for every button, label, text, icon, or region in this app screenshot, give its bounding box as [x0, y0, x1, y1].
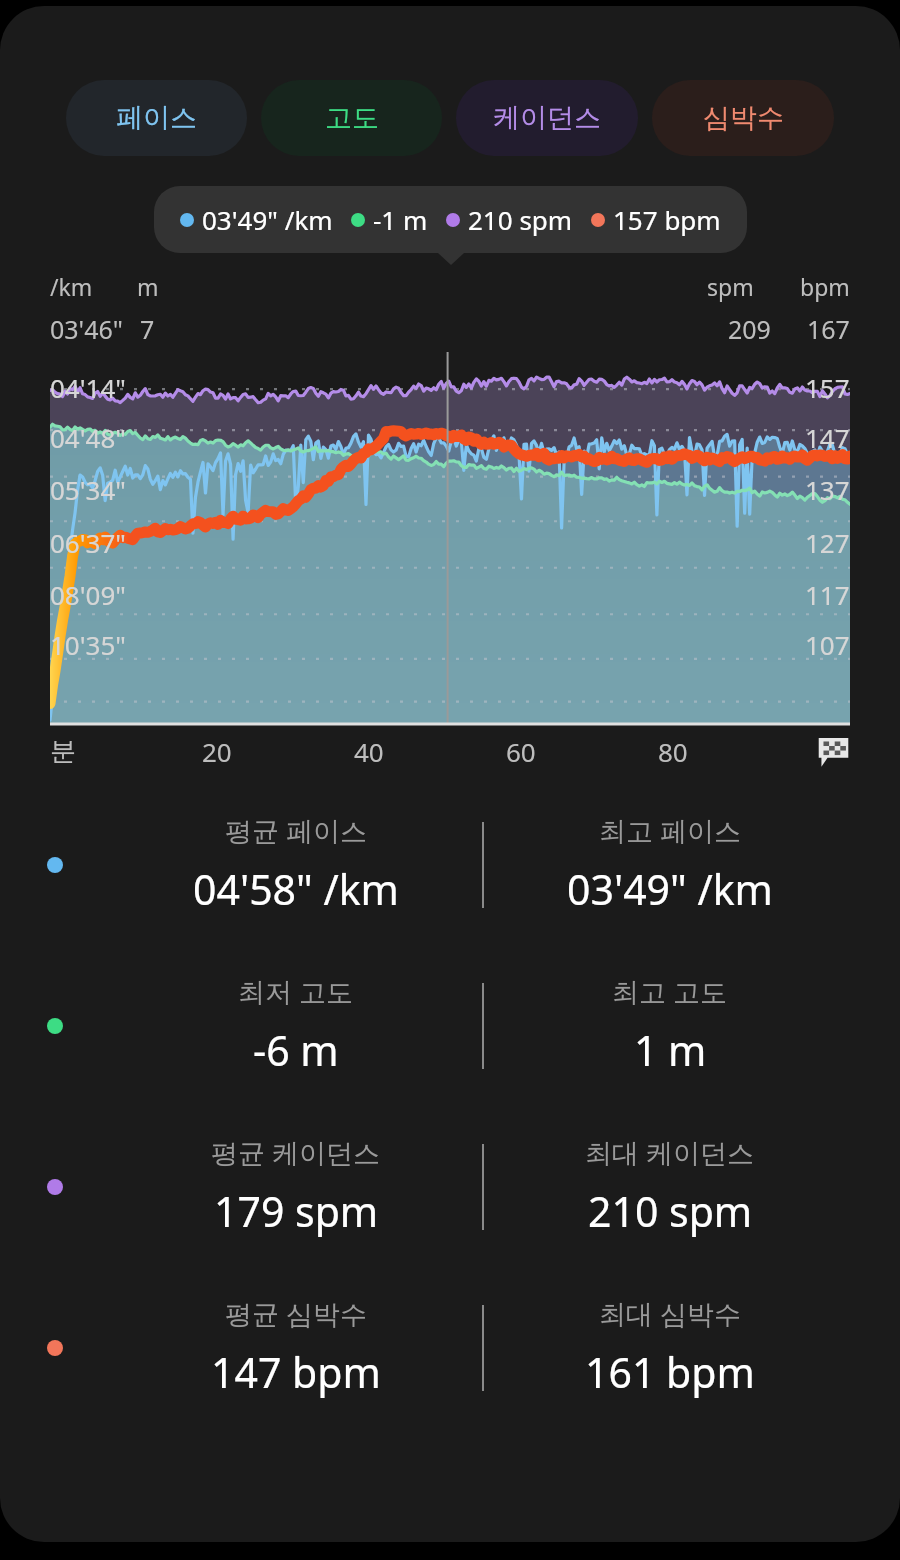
- button[interactable]: 평균 페이스: [0, 812, 900, 917]
- staticText: 179 spm: [214, 1183, 379, 1239]
- staticText: -6 m: [253, 1022, 339, 1078]
- staticText: 80: [658, 734, 688, 769]
- staticText: 210 spm: [588, 1183, 753, 1239]
- staticText: 04'58" /km: [193, 861, 399, 917]
- staticText: 03'49" /km: [202, 202, 333, 237]
- button[interactable]: 최저 고도: [0, 973, 900, 1078]
- staticText: 157 bpm: [613, 202, 721, 237]
- staticText: 20: [202, 734, 232, 769]
- staticText: 평균 심박수: [225, 1295, 368, 1332]
- staticText: 157: [805, 370, 850, 405]
- staticText: 137: [805, 472, 850, 507]
- button[interactable]: 페이스: [66, 80, 247, 156]
- staticText: 147 bpm: [211, 1344, 381, 1400]
- staticText: 40: [354, 734, 384, 769]
- staticText: 04'48": [50, 420, 126, 455]
- other: Finish: [816, 734, 850, 768]
- staticText: 08'09": [50, 577, 126, 612]
- staticText: bpm: [800, 271, 850, 302]
- staticText: 최고 페이스: [599, 812, 742, 849]
- staticText: 06'37": [50, 525, 126, 560]
- staticText: 127: [805, 525, 850, 560]
- staticText: 107: [805, 627, 850, 662]
- staticText: 평균 케이던스: [211, 1134, 381, 1171]
- staticText: /km: [50, 271, 93, 302]
- staticText: 10'35": [50, 627, 126, 662]
- staticText: 평균 페이스: [225, 812, 368, 849]
- staticText: 고도: [325, 101, 379, 135]
- staticText: 161 bpm: [585, 1344, 755, 1400]
- button[interactable]: 평균 심박수: [0, 1295, 900, 1400]
- staticText: 167: [807, 312, 850, 346]
- staticText: -1 m: [373, 202, 428, 237]
- staticText: 최고 고도: [612, 973, 728, 1010]
- button[interactable]: 심박수: [652, 80, 834, 156]
- staticText: 케이던스: [493, 101, 601, 135]
- staticText: 60: [506, 734, 536, 769]
- staticText: 최대 케이던스: [585, 1134, 755, 1171]
- staticText: 페이스: [116, 101, 197, 135]
- button[interactable]: 고도: [261, 80, 442, 156]
- staticText: 최대 심박수: [599, 1295, 742, 1332]
- staticText: spm: [707, 271, 754, 302]
- staticText: 147: [805, 420, 850, 455]
- button[interactable]: 평균 케이던스: [0, 1134, 900, 1239]
- button[interactable]: 케이던스: [456, 80, 638, 156]
- staticText: 05'34": [50, 472, 126, 507]
- staticText: m: [137, 271, 159, 302]
- staticText: 최저 고도: [238, 973, 354, 1010]
- staticText: 7: [140, 312, 155, 346]
- staticText: 1 m: [634, 1022, 707, 1078]
- staticText: 209: [728, 312, 771, 346]
- staticText: 03'49" /km: [567, 861, 773, 917]
- staticText: 분: [50, 735, 76, 768]
- staticText: 04'14": [50, 370, 126, 405]
- staticText: 117: [805, 577, 850, 612]
- staticText: 심박수: [703, 101, 784, 135]
- staticText: 03'46": [50, 312, 124, 346]
- staticText: 210 spm: [468, 202, 573, 237]
